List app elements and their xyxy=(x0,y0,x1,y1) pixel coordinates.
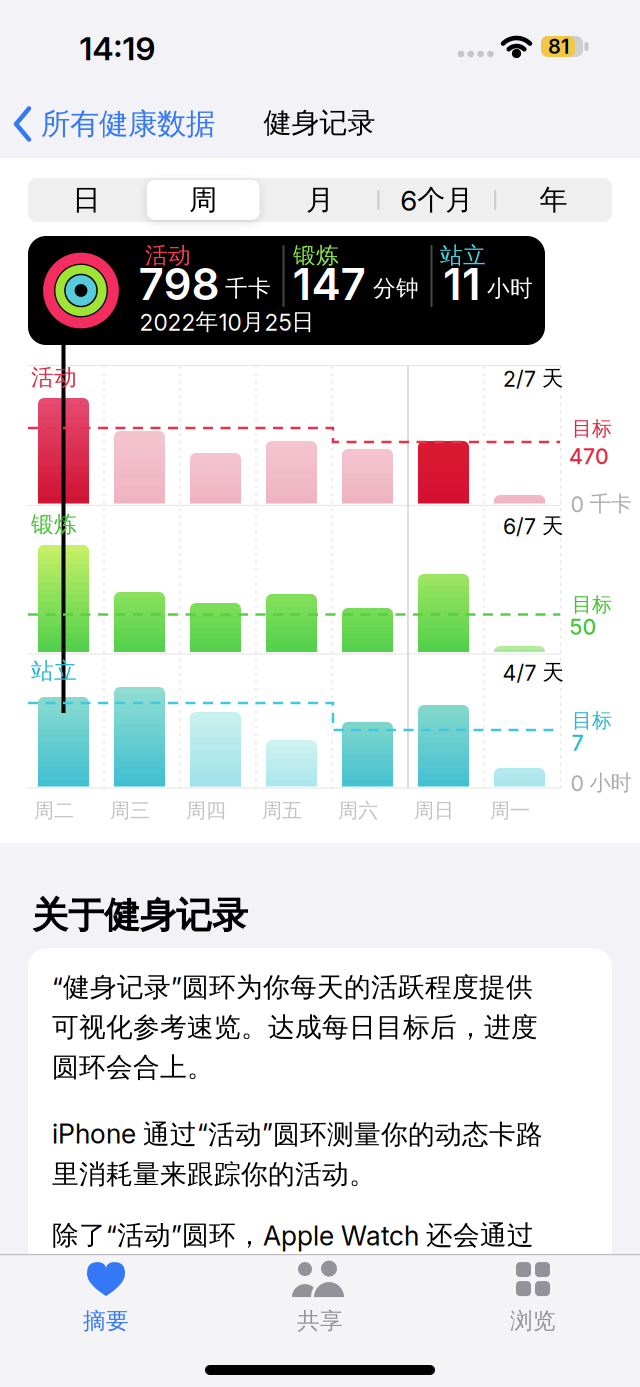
staticText: 50 xyxy=(569,614,596,640)
staticText: 站立 xyxy=(31,657,77,685)
staticText: 小时 xyxy=(487,275,533,302)
staticText: 7 xyxy=(571,730,583,756)
staticText: 6个月 xyxy=(400,183,473,217)
staticText: 798 xyxy=(138,258,219,310)
button[interactable]: 返回所有健康数据 xyxy=(13,100,227,148)
staticText: “健身记录”圆环为你每天的活跃程度提供 xyxy=(52,971,533,1004)
staticText: 目标 xyxy=(572,416,612,441)
staticText: 浏览 xyxy=(510,1307,556,1335)
staticText: 470 xyxy=(569,444,609,469)
staticText: 目标 xyxy=(572,708,612,733)
staticText: 日 xyxy=(72,183,100,217)
button[interactable]: 周 xyxy=(145,178,262,222)
staticText: 健身记录 xyxy=(263,106,375,140)
staticText: 站立 xyxy=(440,242,486,269)
button[interactable]: 共享 xyxy=(222,1262,417,1334)
button[interactable]: 摘要 xyxy=(8,1262,203,1334)
staticText: 周五 xyxy=(262,798,302,823)
staticText: 6/7 天 xyxy=(503,513,563,539)
button[interactable]: 浏览 xyxy=(435,1262,630,1334)
button[interactable]: 6个月 xyxy=(378,178,495,222)
staticText: 11 xyxy=(443,258,481,310)
staticText: 周一 xyxy=(490,798,530,823)
staticText: 14:19 xyxy=(79,30,155,67)
staticText: 共享 xyxy=(297,1307,343,1335)
staticText: 周六 xyxy=(338,798,378,823)
staticText: 所有健康数据 xyxy=(41,106,215,142)
staticText: 周三 xyxy=(110,798,150,823)
staticText: 锻炼 xyxy=(293,242,339,269)
staticText: 4/7 天 xyxy=(502,659,563,686)
staticText: 月 xyxy=(306,183,334,217)
staticText: 千卡 xyxy=(225,275,271,302)
staticText: 圆环会合上。 xyxy=(52,1051,214,1084)
staticText: 147 xyxy=(292,258,365,310)
staticText: 除了“活动”圆环，Apple Watch 还会通过 xyxy=(52,1219,534,1252)
staticText: 活动 xyxy=(145,242,191,269)
button[interactable]: 日 xyxy=(28,178,145,222)
staticText: 分钟 xyxy=(373,275,419,302)
staticText: 周四 xyxy=(186,798,226,823)
button[interactable]: 月 xyxy=(262,178,378,222)
staticText: 周二 xyxy=(34,798,74,823)
staticText: 0 千卡 xyxy=(570,491,631,517)
staticText: 2022年10月25日 xyxy=(139,308,314,336)
staticText: 里消耗量来跟踪你的活动。 xyxy=(52,1158,376,1191)
staticText: 81 xyxy=(548,35,569,58)
staticText: 摘要 xyxy=(83,1307,129,1335)
staticText: 0 小时 xyxy=(570,770,631,796)
staticText: 锻炼 xyxy=(31,511,77,538)
staticText: 2/7 天 xyxy=(503,365,563,392)
button[interactable]: 年 xyxy=(495,178,612,222)
staticText: 关于健身记录 xyxy=(32,893,248,938)
staticText: 活动 xyxy=(31,364,77,391)
staticText: 年 xyxy=(540,183,568,217)
staticText: 可视化参考速览。达成每日目标后，进度 xyxy=(52,1011,538,1044)
staticText: iPhone 通过“活动”圆环测量你的动态卡路 xyxy=(52,1118,543,1151)
staticText: 周 xyxy=(189,183,217,217)
staticText: 目标 xyxy=(572,592,612,617)
staticText: 周日 xyxy=(414,798,454,823)
